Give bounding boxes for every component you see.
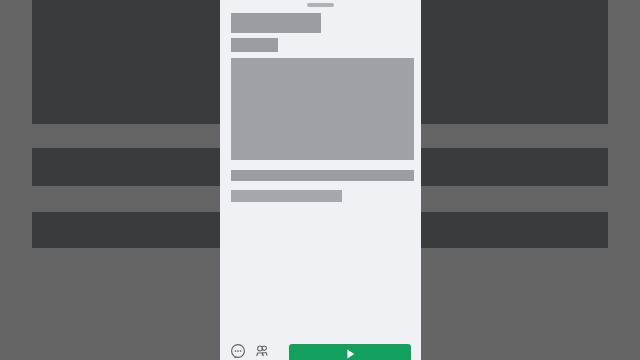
button[interactable]: Group — [253, 342, 271, 360]
button[interactable]: Comments — [229, 342, 247, 360]
button[interactable]: Play — [289, 344, 411, 360]
